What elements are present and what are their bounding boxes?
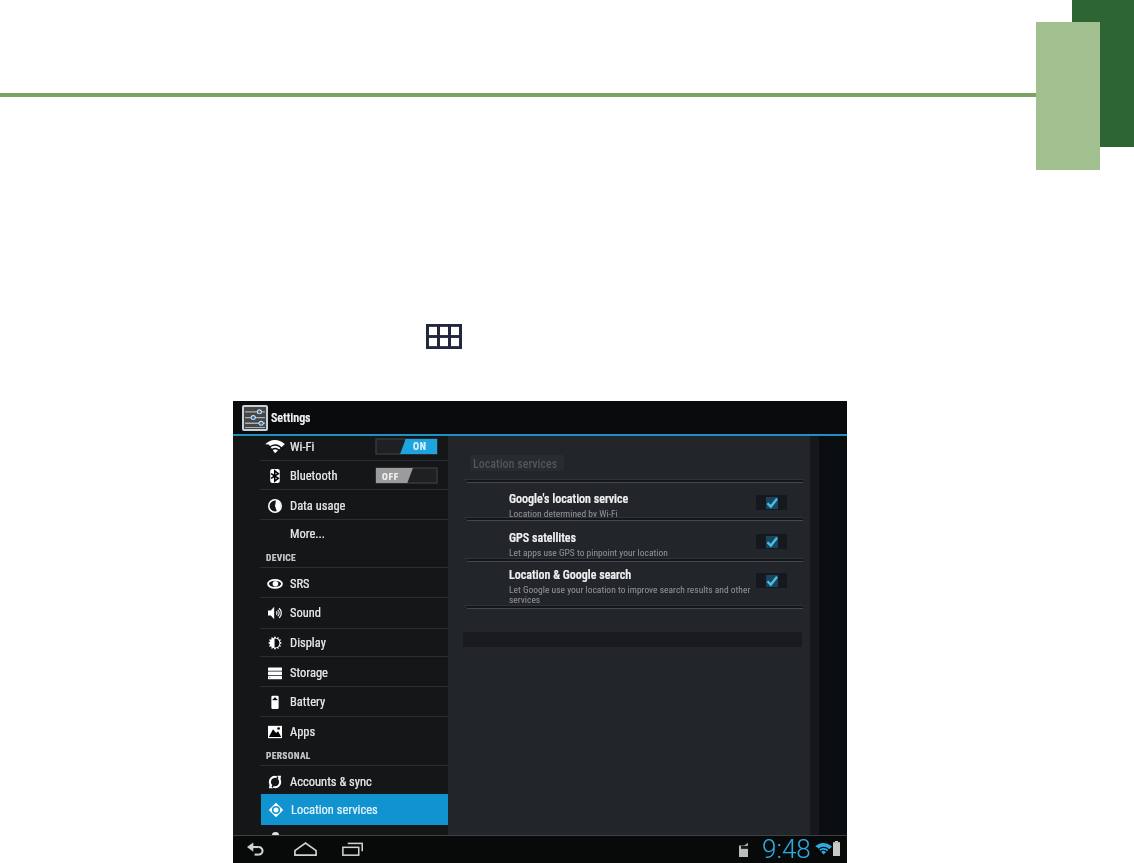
staticText: Sound [290, 605, 322, 620]
button[interactable]: Wi-Fi [233, 436, 448, 461]
button[interactable]: Sound [233, 598, 448, 627]
button[interactable]: Google's location service [448, 487, 810, 521]
staticText: More... [290, 526, 326, 541]
button[interactable]: Data usage [233, 491, 448, 520]
button[interactable]: Location & Google search [448, 563, 810, 605]
button[interactable]: More... [233, 519, 448, 548]
staticText: OFF [382, 471, 399, 482]
staticText: Storage [290, 665, 328, 680]
button[interactable]: Bluetooth [233, 461, 448, 490]
staticText: Location & Google search [509, 568, 632, 582]
staticText: Battery [290, 694, 326, 709]
button[interactable]: Storage [233, 658, 448, 687]
button[interactable]: Accounts & sync [233, 767, 448, 796]
staticText: Location services [473, 457, 558, 471]
staticText: Data usage [290, 498, 346, 513]
staticText: 9:48 [762, 834, 811, 862]
staticText: DEVICE [266, 552, 296, 563]
staticText: GPS satellites [509, 531, 577, 545]
button[interactable]: Back [245, 840, 269, 858]
button[interactable]: Battery [233, 687, 448, 716]
staticText: Location services [291, 802, 378, 817]
staticText: SRS [290, 576, 310, 591]
button[interactable]: Location services [261, 794, 448, 825]
button[interactable]: Recent apps [341, 840, 365, 858]
button[interactable]: Settings [233, 401, 847, 434]
button[interactable]: GPS satellites [448, 526, 810, 560]
button[interactable]: Home [293, 840, 317, 858]
staticText: Apps [290, 724, 316, 739]
button[interactable]: Display [233, 628, 448, 657]
button[interactable]: Apps [233, 717, 448, 746]
staticText: Settings [271, 411, 311, 425]
staticText: Display [290, 635, 326, 650]
staticText: Accounts & sync [290, 774, 372, 789]
staticText: ON [413, 441, 427, 453]
staticText: PERSONAL [266, 750, 311, 761]
button[interactable]: SRS [233, 569, 448, 598]
staticText: Wi-Fi [290, 439, 315, 454]
staticText: Location determined by Wi-Fi [509, 508, 618, 519]
staticText: Let Google use your location to improve … [509, 584, 751, 606]
button[interactable]: Apps grid [426, 324, 462, 349]
staticText: Let apps use GPS to pinpoint your locati… [509, 547, 668, 558]
staticText: Bluetooth [290, 468, 338, 483]
staticText: Google's location service [509, 492, 629, 506]
